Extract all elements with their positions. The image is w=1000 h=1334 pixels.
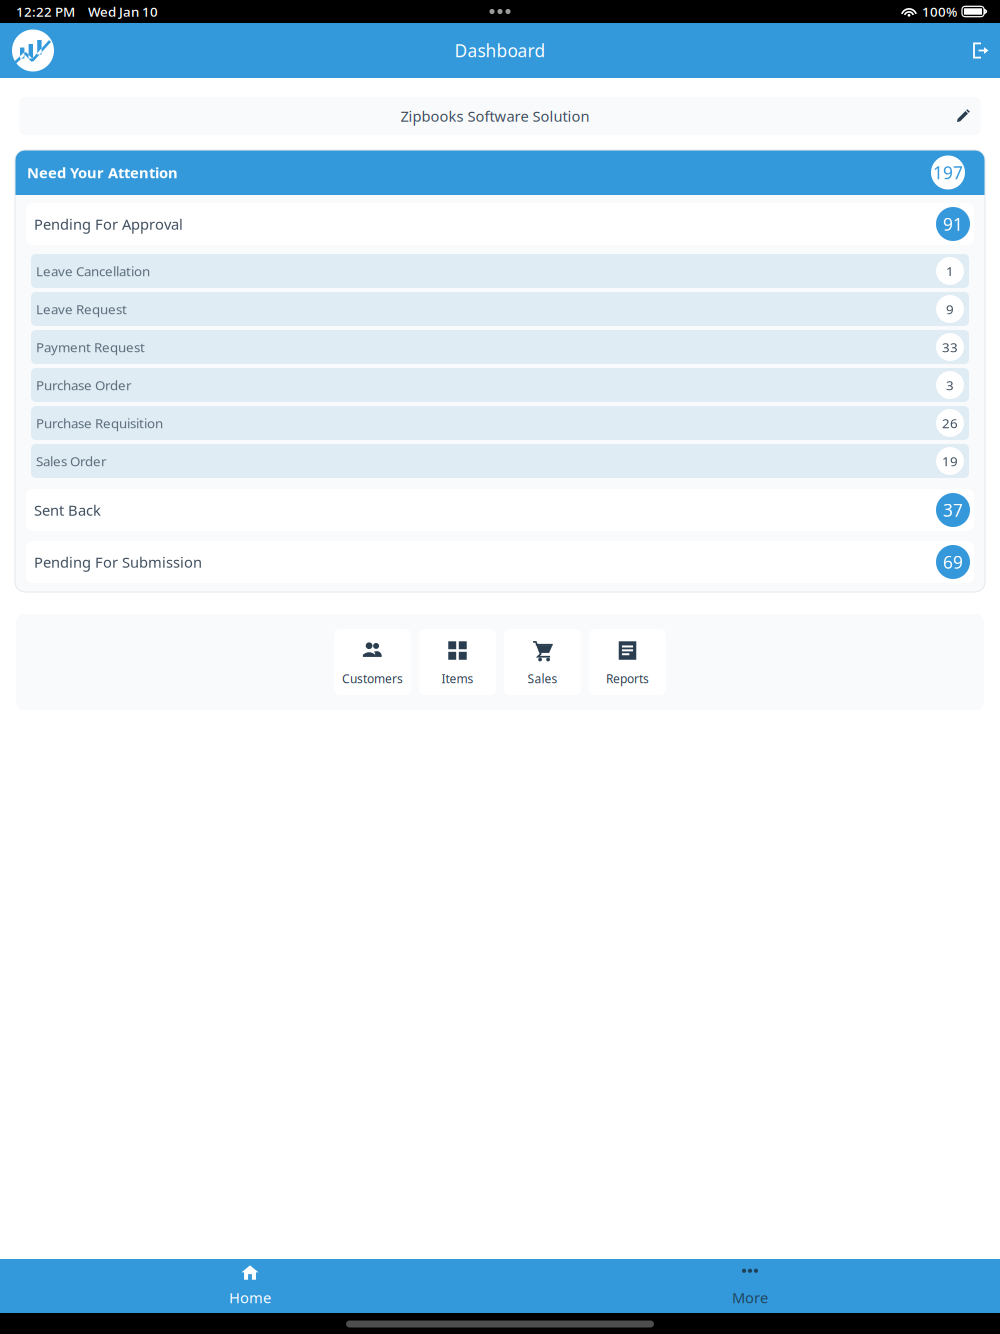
button[interactable]: Purchase Order xyxy=(31,368,969,402)
button[interactable]: Pending For Submission xyxy=(15,541,985,583)
staticText: Pending For Submission xyxy=(34,552,202,572)
staticText: Leave Request xyxy=(36,300,127,318)
staticText: Purchase Order xyxy=(36,376,132,394)
staticText: Sales Order xyxy=(36,452,107,470)
staticText: Sales xyxy=(527,670,557,686)
staticText: 1 xyxy=(946,262,954,280)
staticText: Dashboard xyxy=(454,39,545,62)
staticText: Sent Back xyxy=(34,500,101,520)
button[interactable]: Sales Order xyxy=(31,444,969,478)
button[interactable]: Leave Request xyxy=(31,292,969,326)
staticText: 26 xyxy=(942,414,958,432)
staticText: Purchase Requisition xyxy=(36,414,163,432)
staticText: Customers xyxy=(342,670,403,686)
button[interactable]: Company logo xyxy=(12,29,54,71)
button[interactable]: Leave Cancellation xyxy=(31,254,969,288)
button[interactable]: Home xyxy=(0,1259,500,1313)
button[interactable]: Customers xyxy=(334,629,411,695)
staticText: Wed Jan 10 xyxy=(88,3,158,20)
staticText: 12:22 PM xyxy=(16,3,75,20)
staticText: 3 xyxy=(946,376,954,394)
staticText: Home xyxy=(229,1288,271,1307)
button[interactable]: Sales xyxy=(504,629,581,695)
button[interactable]: Items xyxy=(419,629,496,695)
button[interactable]: Payment Request xyxy=(31,330,969,364)
button[interactable]: More xyxy=(500,1259,1000,1313)
button[interactable]: Pending For Approval xyxy=(15,203,985,245)
staticText: Leave Cancellation xyxy=(36,262,150,280)
button[interactable]: Zipbooks Software Solution xyxy=(0,78,1000,150)
staticText: 100% xyxy=(922,3,957,20)
staticText: More xyxy=(732,1288,768,1307)
staticText: Zipbooks Software Solution xyxy=(400,106,589,126)
button[interactable]: Log out xyxy=(973,42,989,58)
staticText: Items xyxy=(441,670,473,686)
staticText: 9 xyxy=(946,300,954,318)
staticText: Pending For Approval xyxy=(34,214,183,234)
staticText: 33 xyxy=(942,338,958,356)
staticText: 91 xyxy=(943,212,963,235)
staticText: Reports xyxy=(606,670,649,686)
staticText: Need Your Attention xyxy=(27,163,178,182)
staticText: 19 xyxy=(942,452,958,470)
button[interactable]: Purchase Requisition xyxy=(31,406,969,440)
staticText: 197 xyxy=(933,161,963,184)
button[interactable]: Sent Back xyxy=(15,489,985,531)
button[interactable]: Reports xyxy=(589,629,666,695)
staticText: 37 xyxy=(943,498,963,521)
staticText: Payment Request xyxy=(36,338,145,356)
staticText: 69 xyxy=(943,550,963,573)
